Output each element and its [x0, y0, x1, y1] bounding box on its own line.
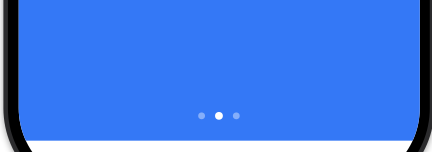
button[interactable]: Page 2, current page	[215, 112, 223, 120]
button[interactable]: Page 3	[233, 112, 240, 119]
button[interactable]: Page 1	[198, 112, 205, 119]
